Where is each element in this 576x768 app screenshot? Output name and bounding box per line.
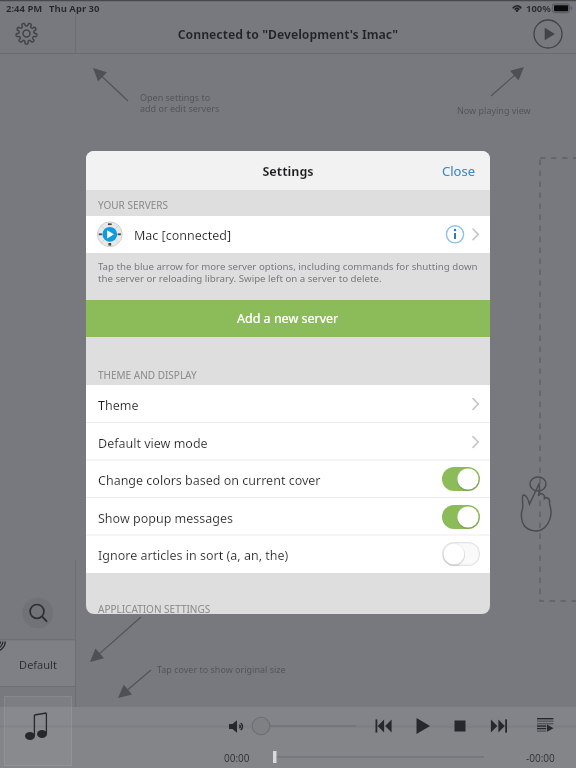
staticText: 2:44 PM xyxy=(6,2,43,15)
staticText: 100% xyxy=(526,2,551,15)
staticText: Mac [connected] xyxy=(134,227,232,244)
staticText: Now playing view xyxy=(457,104,531,116)
staticText: 00:00 xyxy=(224,751,250,765)
staticText: YOUR SERVERS xyxy=(98,198,168,212)
button[interactable]: Change colors based on current cover xyxy=(442,467,480,491)
button[interactable]: Show popup messages xyxy=(86,498,490,536)
button[interactable]: Settings xyxy=(16,23,37,44)
staticText: the server or reloading library. Swipe l… xyxy=(98,272,382,285)
staticText: THEME AND DISPLAY xyxy=(98,368,197,382)
staticText: Ignore articles in sort (a, an, the) xyxy=(98,547,289,564)
staticText: Connected to "Development's Imac" xyxy=(0,26,576,43)
staticText: Open settings to xyxy=(140,91,211,103)
staticText: -00:00 xyxy=(526,751,555,765)
button[interactable]: Change colors based on current cover xyxy=(86,460,490,498)
button[interactable]: Add a new server xyxy=(86,300,490,337)
button[interactable]: Mac [connected] xyxy=(86,216,490,253)
staticText: Default view mode xyxy=(98,435,208,452)
button[interactable]: Ignore articles in sort (a, an, the) xyxy=(442,542,480,566)
button[interactable]: Default view mode xyxy=(86,423,490,461)
staticText: Settings xyxy=(86,163,490,180)
button[interactable]: Now playing xyxy=(533,19,563,49)
button[interactable]: Show popup messages xyxy=(442,505,480,529)
staticText: Change colors based on current cover xyxy=(98,472,321,489)
staticText: Tap the blue arrow for more server optio… xyxy=(98,260,478,273)
staticText: Show popup messages xyxy=(98,510,234,527)
button[interactable]: Ignore articles in sort (a, an, the) xyxy=(86,535,490,573)
staticText: APPLICATION SETTINGS xyxy=(98,602,211,614)
staticText: add or edit servers xyxy=(140,102,220,114)
staticText: Default xyxy=(0,657,76,672)
staticText: Close xyxy=(442,162,475,180)
button[interactable]: Theme xyxy=(86,385,490,423)
staticText: Thu Apr 30 xyxy=(49,2,100,15)
staticText: Tap cover to show original size xyxy=(157,663,286,675)
button[interactable]: Close xyxy=(427,151,490,190)
staticText: Add a new server xyxy=(237,310,339,327)
staticText: Theme xyxy=(98,397,139,414)
